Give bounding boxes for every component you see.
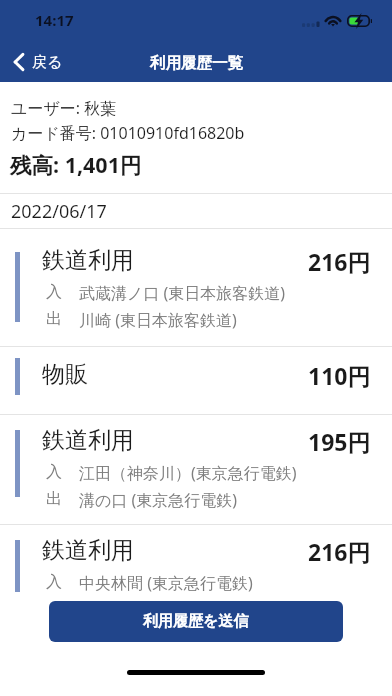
- staticText: 216円: [308, 536, 371, 567]
- button[interactable]: 戻る: [0, 46, 73, 78]
- staticText: 中央林間 (東京急行電鉄): [79, 572, 253, 594]
- staticText: 戻る: [32, 53, 63, 72]
- button[interactable]: 物販: [0, 347, 392, 414]
- button[interactable]: 鉄道利用: [0, 229, 392, 346]
- button[interactable]: 鉄道利用: [0, 415, 392, 524]
- staticText: 195円: [308, 426, 371, 457]
- staticText: 出: [46, 309, 62, 329]
- staticText: 川崎 (東日本旅客鉄道): [79, 309, 237, 331]
- staticText: 利用履歴を送信: [143, 612, 249, 631]
- staticText: カード番号: 01010910fd16820b: [11, 122, 245, 144]
- staticText: 溝の口 (東京急行電鉄): [79, 489, 238, 511]
- staticText: 残高: 1,401円: [10, 150, 142, 179]
- button[interactable]: 鉄道利用: [0, 525, 392, 615]
- staticText: 利用履歴一覧: [150, 53, 243, 73]
- staticText: 110円: [308, 360, 371, 391]
- staticText: 鉄道利用: [42, 426, 134, 455]
- staticText: 鉄道利用: [42, 246, 134, 275]
- staticText: 216円: [308, 246, 371, 277]
- staticText: 入: [46, 282, 62, 302]
- staticText: 出: [46, 489, 62, 509]
- staticText: 2022/06/17: [11, 199, 107, 224]
- other: 戻る: [12, 52, 26, 72]
- staticText: 14:17: [35, 10, 74, 30]
- staticText: 入: [46, 462, 62, 482]
- staticText: 入: [46, 572, 62, 592]
- staticText: ユーザー: 秋葉: [11, 97, 117, 119]
- staticText: 鉄道利用: [42, 536, 134, 565]
- staticText: 武蔵溝ノ口 (東日本旅客鉄道): [79, 282, 286, 304]
- staticText: 物販: [42, 360, 88, 389]
- button[interactable]: 利用履歴を送信: [49, 601, 343, 642]
- staticText: 江田（神奈川）(東京急行電鉄): [79, 462, 297, 484]
